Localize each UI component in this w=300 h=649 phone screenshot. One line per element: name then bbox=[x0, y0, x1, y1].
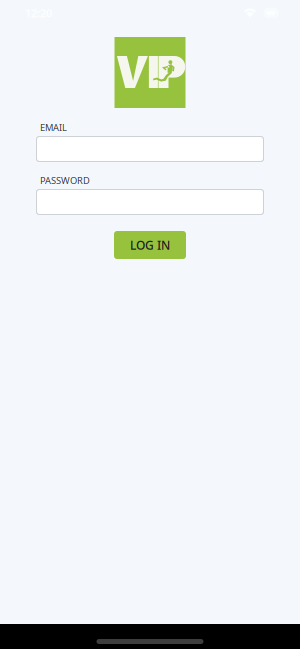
button[interactable]: LOG IN bbox=[114, 231, 186, 259]
button[interactable] bbox=[36, 136, 264, 162]
staticText: PASSWORD bbox=[40, 174, 90, 187]
staticText: LOG IN bbox=[130, 237, 170, 253]
button[interactable] bbox=[36, 189, 264, 215]
staticText: EMAIL bbox=[40, 121, 67, 134]
